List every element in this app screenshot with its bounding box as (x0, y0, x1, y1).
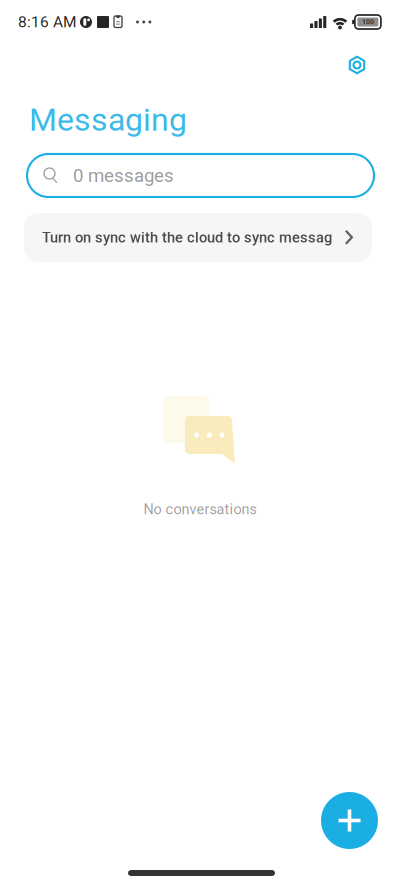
staticText: 100 (362, 18, 374, 26)
staticText: No conversations (143, 501, 256, 518)
staticText: Turn on sync with the cloud to sync mess… (42, 229, 348, 246)
button[interactable]: Turn on sync with the cloud to sync mess… (24, 213, 372, 262)
button[interactable]: 0 messages (27, 154, 374, 197)
staticText: Messaging (29, 101, 187, 138)
button[interactable]: Settings (336, 44, 378, 86)
staticText: 8:16 AM (18, 13, 77, 31)
button[interactable]: New message (321, 792, 378, 849)
staticText: 0 messages (73, 165, 174, 186)
